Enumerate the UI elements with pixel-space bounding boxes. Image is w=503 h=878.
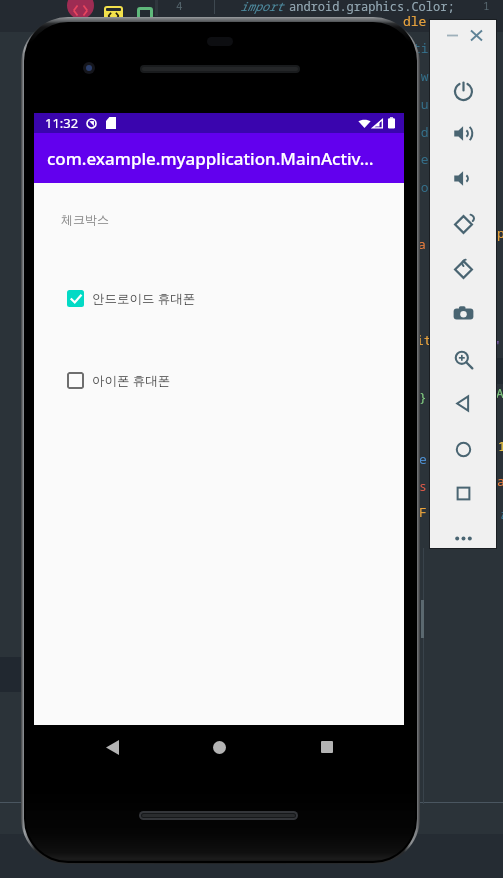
staticText: import: [240, 0, 284, 14]
staticText: 1: [498, 437, 503, 455]
button[interactable]: Back: [82, 726, 142, 768]
button[interactable]: 아이폰 휴대폰: [34, 363, 404, 397]
staticText: 11:32: [45, 114, 79, 132]
staticText: t: [498, 505, 503, 523]
button[interactable]: Minimize: [441, 24, 463, 46]
staticText: a: [418, 235, 426, 253]
staticText: e: [419, 450, 427, 468]
staticText: ew: [413, 67, 429, 85]
button[interactable]: Rotate right: [435, 250, 491, 288]
staticText: 1: [483, 0, 490, 13]
button[interactable]: Back: [435, 384, 491, 422]
button[interactable]: Volume up: [435, 114, 491, 152]
staticText: 체크박스: [61, 212, 109, 227]
staticText: 아이폰 휴대폰: [92, 372, 171, 389]
button[interactable]: Zoom: [435, 340, 491, 378]
staticText: s: [419, 477, 427, 495]
staticText: a: [497, 472, 503, 490]
staticText: A: [496, 384, 503, 402]
button[interactable]: Power: [435, 72, 491, 110]
staticText: 's: [494, 336, 503, 354]
staticText: 4: [176, 0, 183, 13]
button[interactable]: Close: [465, 24, 487, 46]
staticText: Te: [413, 150, 429, 168]
button[interactable]: Volume down: [435, 159, 491, 197]
staticText: }: [419, 388, 427, 406]
button[interactable]: com.example.myapplication.MainActiv…: [34, 133, 404, 183]
staticText: com.example.myapplication.MainActiv…: [47, 147, 374, 170]
staticText: Bu: [413, 95, 429, 113]
button[interactable]: 안드로이드 휴대폰: [34, 281, 404, 315]
button[interactable]: Home: [435, 430, 491, 468]
button[interactable]: Home: [189, 726, 249, 768]
button[interactable]: More options: [435, 519, 491, 557]
button[interactable]: Rotate left: [435, 205, 491, 243]
staticText: F: [419, 503, 427, 521]
staticText: Ed: [413, 123, 429, 141]
button[interactable]: Overview: [435, 474, 491, 512]
button[interactable]: Recent apps: [297, 726, 357, 768]
staticText: 안드로이드 휴대폰: [92, 290, 196, 307]
button[interactable]: Take screenshot: [435, 294, 491, 332]
staticText: ti: [413, 39, 429, 57]
staticText: p: [497, 224, 503, 242]
staticText: To: [413, 178, 429, 196]
staticText: dle: [403, 12, 427, 30]
staticText: android.graphics.Color;: [289, 0, 455, 14]
staticText: it: [416, 331, 432, 349]
